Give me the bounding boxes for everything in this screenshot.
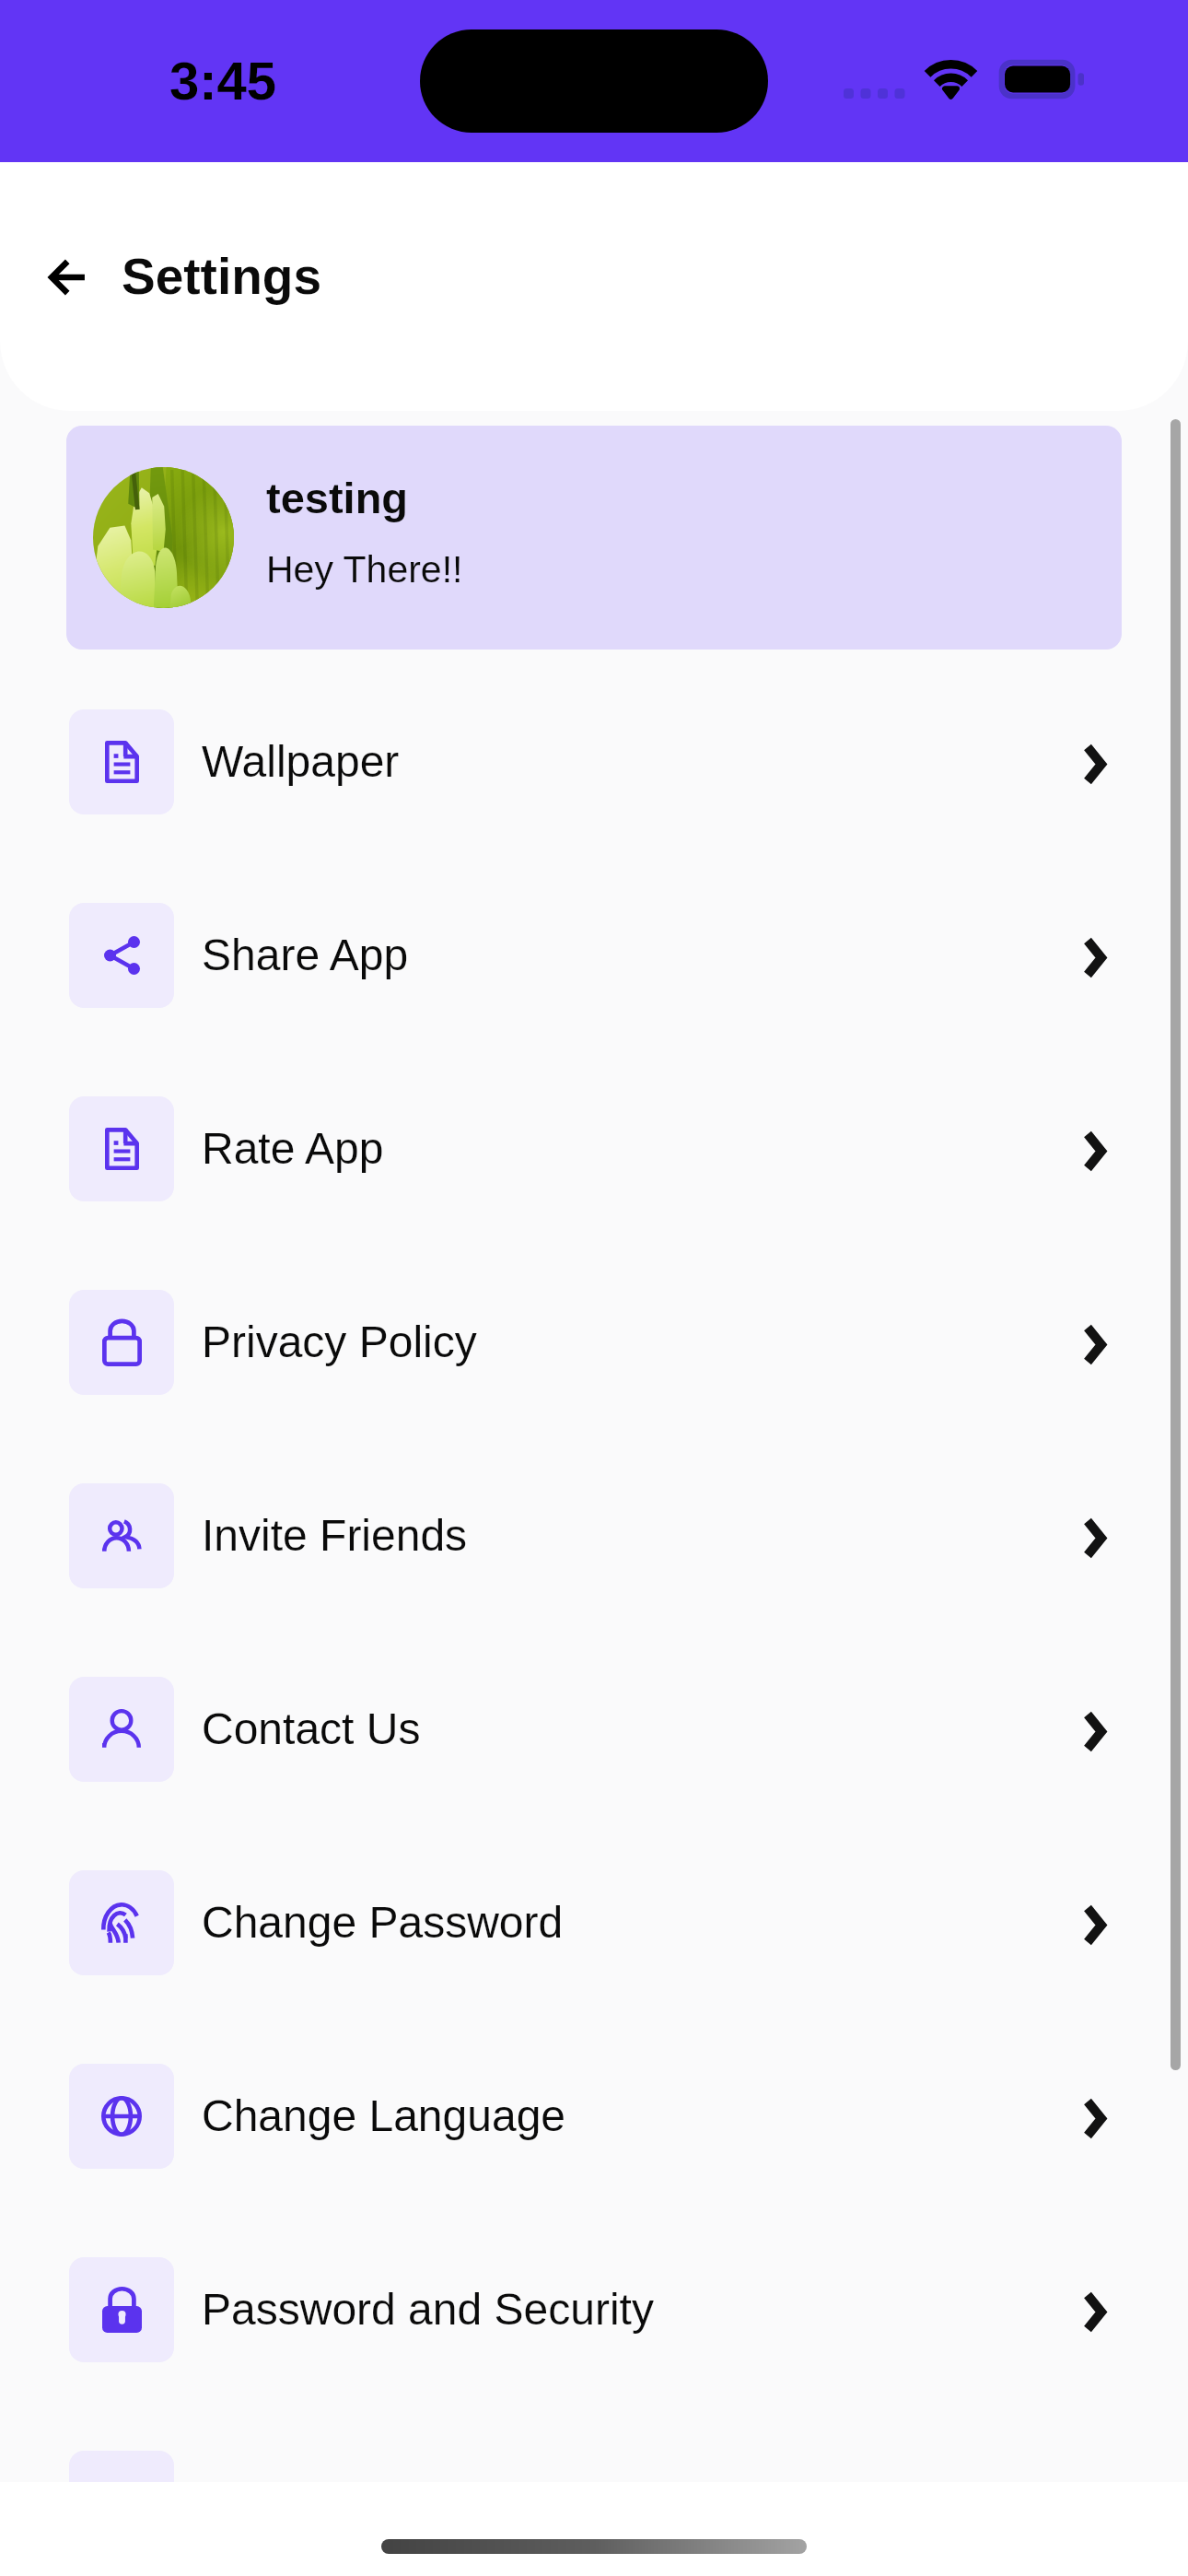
staticText: Share App — [202, 931, 409, 980]
staticText: Settings — [122, 248, 321, 304]
staticText: testing — [266, 474, 409, 522]
staticText: Password and Security — [202, 2285, 654, 2335]
button[interactable]: Rate App — [0, 1096, 1188, 1201]
button[interactable]: Wallpaper — [0, 709, 1188, 814]
staticText: Privacy Policy — [202, 1317, 477, 1367]
button[interactable]: Logout — [0, 2451, 1188, 2482]
staticText: Change Language — [202, 2091, 566, 2141]
staticText: 3:45 — [169, 51, 277, 111]
staticText: Hey There!! — [266, 548, 463, 591]
staticText: Contact Us — [202, 1704, 421, 1754]
button[interactable]: Change Language — [0, 2064, 1188, 2169]
button[interactable]: Password and Security — [0, 2257, 1188, 2362]
button[interactable]: Change Password — [0, 1870, 1188, 1975]
button[interactable]: Invite Friends — [0, 1483, 1188, 1588]
staticText: Change Password — [202, 1898, 564, 1948]
staticText: Invite Friends — [202, 1511, 468, 1561]
button[interactable]: Share App — [0, 903, 1188, 1008]
button[interactable]: testing — [66, 426, 1122, 650]
staticText: Wallpaper — [202, 737, 400, 787]
button[interactable]: Privacy Policy — [0, 1290, 1188, 1395]
button[interactable]: Back — [44, 253, 92, 301]
button[interactable]: Contact Us — [0, 1677, 1188, 1782]
staticText: Rate App — [202, 1124, 384, 1174]
